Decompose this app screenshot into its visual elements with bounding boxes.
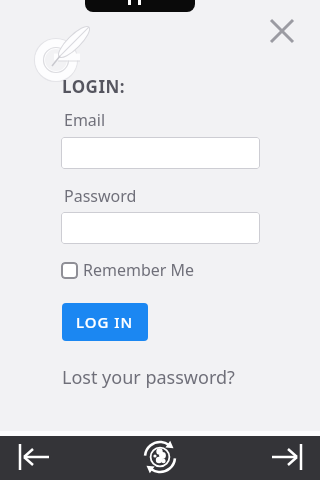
staticText: Remember Me bbox=[83, 259, 195, 281]
button[interactable] bbox=[61, 262, 78, 279]
button[interactable] bbox=[138, 435, 182, 479]
staticText: LOG IN bbox=[76, 312, 134, 332]
button[interactable] bbox=[8, 438, 60, 478]
button[interactable] bbox=[268, 17, 296, 45]
button[interactable] bbox=[61, 212, 260, 244]
button[interactable]: LOG IN bbox=[62, 303, 148, 341]
button[interactable]: Lost your password? bbox=[62, 365, 235, 390]
button[interactable] bbox=[260, 438, 312, 478]
button[interactable] bbox=[85, 0, 195, 12]
staticText: Password bbox=[64, 185, 137, 207]
staticText: LOGIN: bbox=[62, 75, 126, 98]
button[interactable] bbox=[61, 137, 260, 169]
staticText: Email bbox=[64, 109, 106, 131]
